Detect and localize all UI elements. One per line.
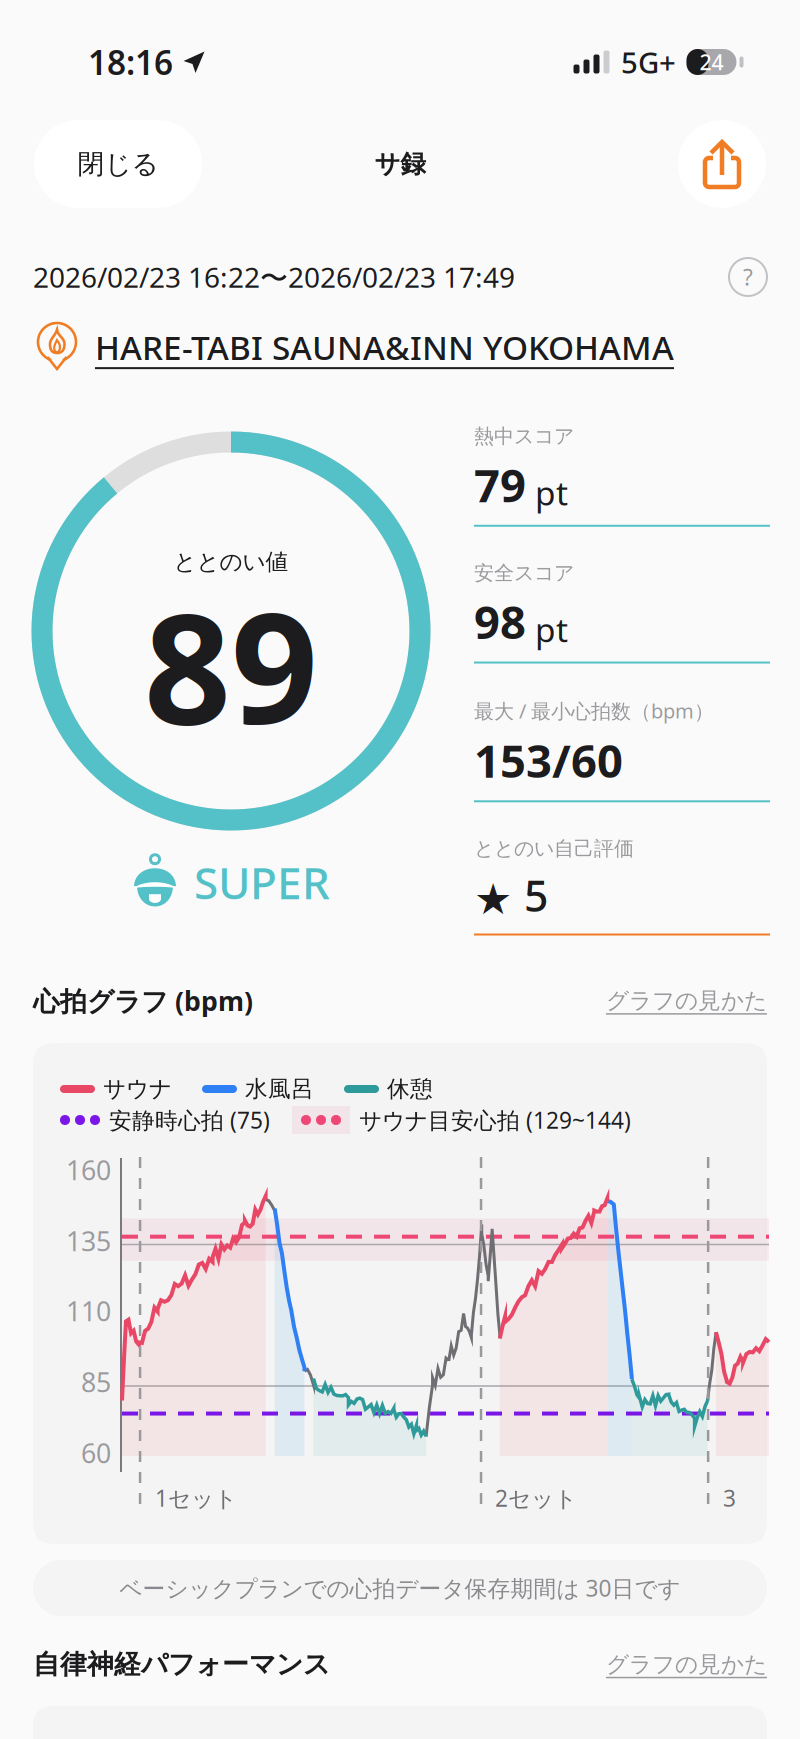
staticText: ととのい値 (173, 548, 288, 576)
staticText: 最大 / 最小心拍数（bpm） (474, 697, 714, 724)
staticText: 閉じる (77, 148, 158, 180)
staticText: 160 (66, 1152, 111, 1188)
staticText: 心拍グラフ (bpm) (33, 983, 253, 1018)
staticText: ベーシックプランでの心拍データ保存期間は 30日です (119, 1573, 680, 1603)
staticText: ? (743, 262, 753, 292)
staticText: 135 (66, 1223, 111, 1259)
staticText: 安全スコア (474, 561, 574, 585)
staticText: SUPER (194, 853, 330, 911)
staticText: ★ (474, 875, 512, 923)
staticText: 18:16 (88, 40, 173, 84)
staticText: グラフの見かた (606, 987, 767, 1015)
button[interactable]: グラフの見かた (606, 987, 767, 1015)
staticText: 60 (81, 1435, 111, 1471)
staticText: 89 (144, 564, 318, 766)
staticText: 安静時心拍 (75) (109, 1105, 270, 1135)
button[interactable]: ヘルプ (729, 258, 767, 296)
staticText: 1セット (155, 1483, 237, 1513)
button[interactable]: 閉じる (34, 120, 202, 208)
button[interactable]: HARE-TABI SAUNA&INN YOKOHAMA (33, 296, 767, 374)
staticText: サウナ (103, 1075, 172, 1103)
staticText: 24 (699, 48, 723, 76)
staticText: グラフの見かた (606, 1650, 767, 1678)
staticText: 2セット (495, 1483, 577, 1513)
staticText: pt (535, 470, 568, 515)
staticText: 79 (474, 455, 526, 515)
staticText: 5 (524, 867, 548, 924)
staticText: ととのい自己評価 (474, 836, 634, 861)
staticText: 98 (474, 591, 526, 651)
staticText: サウナ目安心拍 (129~144) (359, 1105, 631, 1135)
staticText: 153/60 (474, 730, 623, 790)
staticText: 水風呂 (245, 1075, 314, 1103)
button[interactable]: 共有 (678, 120, 766, 208)
staticText: 110 (66, 1293, 111, 1329)
staticText: 2026/02/23 16:22〜2026/02/23 17:49 (33, 258, 515, 296)
button[interactable]: グラフの見かた (606, 1650, 767, 1678)
staticText: HARE-TABI SAUNA&INN YOKOHAMA (95, 325, 674, 369)
staticText: 5G+ (621, 42, 676, 81)
staticText: pt (535, 607, 568, 652)
staticText: 熱中スコア (474, 424, 574, 449)
staticText: 休憩 (387, 1075, 433, 1103)
staticText: 85 (81, 1364, 111, 1400)
staticText: 3 (723, 1483, 736, 1513)
staticText: サ録 (374, 148, 425, 179)
staticText: 自律神経パフォーマンス (33, 1648, 330, 1681)
